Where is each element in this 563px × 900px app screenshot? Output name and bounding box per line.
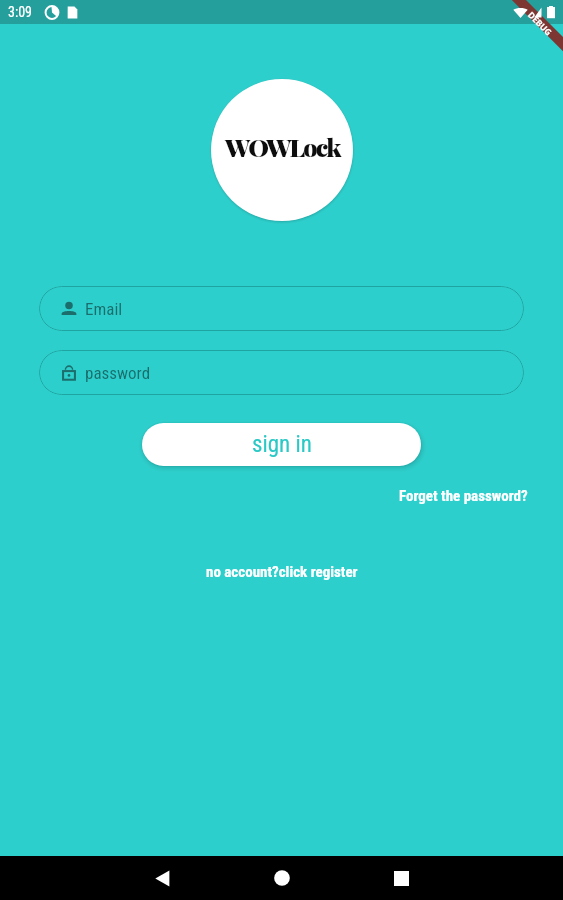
staticText: Forget the password? bbox=[399, 487, 528, 505]
button[interactable]: Recent apps bbox=[383, 860, 419, 896]
staticText: 3:09 bbox=[8, 4, 33, 20]
button[interactable]: no account?click register bbox=[202, 560, 362, 584]
staticText: WOWLock bbox=[225, 130, 340, 163]
button[interactable]: Email bbox=[39, 286, 524, 331]
staticText: sign in bbox=[252, 431, 312, 458]
staticText: DEBUG bbox=[525, 9, 555, 39]
button[interactable]: Home bbox=[264, 860, 300, 896]
staticText: password bbox=[85, 363, 151, 383]
button[interactable]: Forget the password? bbox=[395, 484, 532, 508]
button[interactable]: sign in bbox=[142, 423, 421, 466]
staticText: Email bbox=[85, 299, 123, 319]
button[interactable]: password bbox=[39, 350, 524, 395]
button[interactable]: Back bbox=[144, 860, 180, 896]
staticText: no account?click register bbox=[206, 563, 358, 581]
